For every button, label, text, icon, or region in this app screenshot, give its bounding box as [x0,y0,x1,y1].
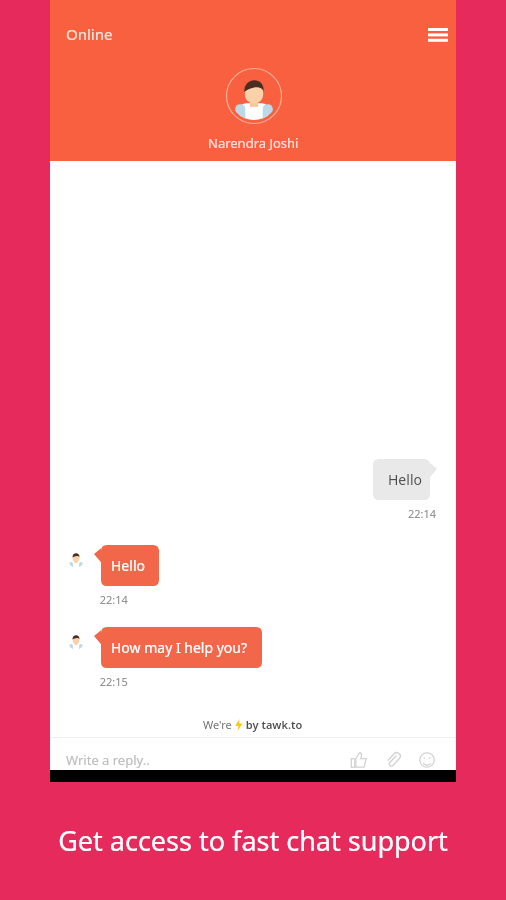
button[interactable]: Hello [373,459,437,500]
staticText: We're [203,717,235,732]
staticText: Hello [388,470,422,489]
staticText: Hello [111,556,145,575]
staticText: Write a reply.. [66,751,150,769]
staticText: How may I help you? [111,638,248,657]
staticText: by tawk.to [243,717,303,732]
staticText: Online [66,24,113,44]
button[interactable]: Like [346,747,372,773]
button[interactable]: Menu [421,18,455,52]
staticText: 22:14 [94,592,128,607]
staticText: Narendra Joshi [208,134,299,152]
button[interactable]: Emoji [414,747,440,773]
button[interactable]: Hello [94,545,159,586]
button[interactable]: Attach file [380,747,406,773]
staticText: 22:15 [94,674,128,689]
button[interactable]: How may I help you? [94,627,262,668]
button[interactable]: Write a reply.. [66,751,346,769]
staticText: 22:14 [408,506,437,521]
staticText: Get access to fast chat support [0,822,506,859]
